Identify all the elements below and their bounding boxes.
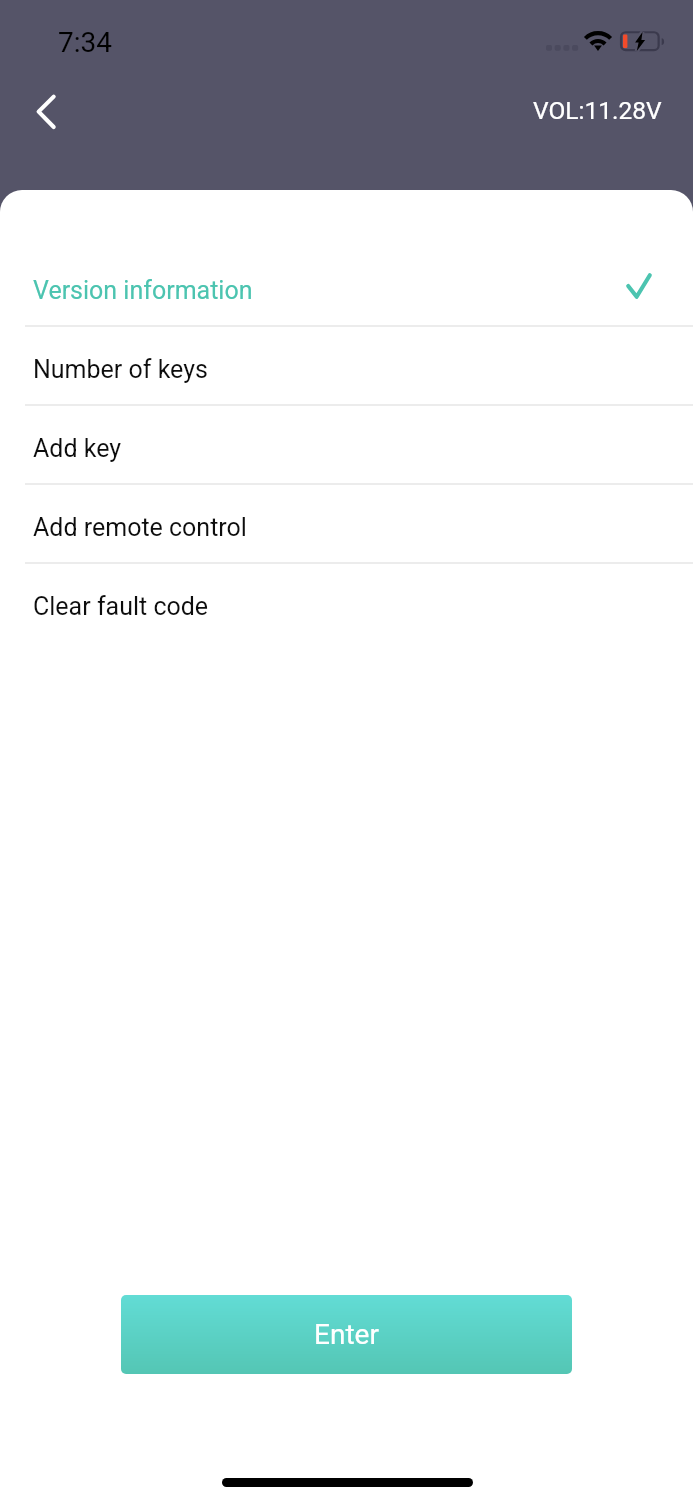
staticText: Clear fault code xyxy=(33,592,209,621)
button[interactable]: Back xyxy=(14,78,80,144)
button[interactable]: Version information xyxy=(0,248,693,327)
staticText: Version information xyxy=(33,276,253,305)
button[interactable]: Add remote control xyxy=(0,485,693,564)
staticText: Number of keys xyxy=(33,355,208,384)
staticText: Add key xyxy=(33,434,122,463)
button[interactable]: Enter xyxy=(121,1295,572,1374)
staticText: VOL:11.28V xyxy=(533,96,662,125)
button[interactable]: Add key xyxy=(0,406,693,485)
button[interactable]: Clear fault code xyxy=(0,564,693,643)
staticText: Enter xyxy=(314,1318,379,1351)
staticText: 7:34 xyxy=(58,26,112,59)
button[interactable]: Number of keys xyxy=(0,327,693,406)
staticText: Add remote control xyxy=(33,513,247,542)
